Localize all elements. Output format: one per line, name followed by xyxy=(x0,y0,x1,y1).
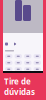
button[interactable] xyxy=(24,54,31,58)
button[interactable] xyxy=(33,54,41,58)
button[interactable] xyxy=(33,60,41,65)
button[interactable] xyxy=(24,67,31,71)
button[interactable] xyxy=(24,60,31,65)
button[interactable] xyxy=(33,67,41,71)
button[interactable] xyxy=(5,67,12,71)
button[interactable] xyxy=(5,54,12,58)
button[interactable] xyxy=(14,67,22,71)
staticText: Tire de dúvidas xyxy=(4,76,35,97)
button[interactable] xyxy=(14,54,22,58)
button[interactable] xyxy=(5,60,12,65)
button[interactable] xyxy=(14,60,22,65)
